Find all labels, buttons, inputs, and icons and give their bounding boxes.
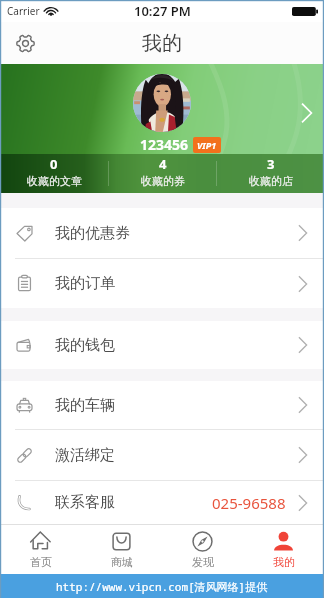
button[interactable]: 我的 xyxy=(243,525,324,574)
staticText: 10:27 PM xyxy=(134,2,191,20)
button[interactable]: 4 xyxy=(109,154,216,193)
staticText: 收藏的文章 xyxy=(27,174,82,188)
staticText: 首页 xyxy=(30,555,52,569)
staticText: 激活绑定 xyxy=(55,446,115,465)
button[interactable]: 商城 xyxy=(81,525,162,574)
staticText: 收藏的店 xyxy=(249,174,293,188)
staticText: 123456 xyxy=(140,135,189,154)
button[interactable]: 我的车辆 xyxy=(0,381,324,429)
button[interactable]: 联系客服 xyxy=(0,481,324,524)
button[interactable]: Profile details xyxy=(296,102,318,124)
button[interactable]: 我的订单 xyxy=(0,259,324,308)
button[interactable]: Settings xyxy=(8,26,43,61)
button[interactable]: 0 xyxy=(0,154,108,193)
staticText: Carrier xyxy=(7,4,40,18)
staticText: http://www.vipcn.com[清风网络]提供 xyxy=(56,579,268,594)
staticText: 我的 xyxy=(273,555,295,569)
staticText: 3 xyxy=(267,155,275,173)
staticText: 收藏的券 xyxy=(141,174,185,188)
staticText: 我的 xyxy=(142,31,182,56)
staticText: 发现 xyxy=(192,555,214,569)
staticText: 我的车辆 xyxy=(55,396,115,415)
button[interactable]: 3 xyxy=(217,154,324,193)
staticText: 025-96588 xyxy=(212,493,286,513)
button[interactable]: 我的优惠券 xyxy=(0,208,324,258)
button[interactable]: 我的钱包 xyxy=(0,321,324,369)
staticText: 我的优惠券 xyxy=(55,224,130,243)
staticText: 商城 xyxy=(111,555,133,569)
staticText: 我的订单 xyxy=(55,274,115,293)
staticText: 4 xyxy=(159,155,167,173)
button[interactable]: 发现 xyxy=(162,525,243,574)
button[interactable]: 首页 xyxy=(0,525,81,574)
staticText: 0 xyxy=(50,155,58,173)
staticText: 联系客服 xyxy=(55,493,115,512)
staticText: VIP1 xyxy=(197,139,217,151)
button[interactable]: Avatar xyxy=(133,74,191,132)
staticText: 我的钱包 xyxy=(55,336,115,355)
button[interactable]: 激活绑定 xyxy=(0,430,324,480)
